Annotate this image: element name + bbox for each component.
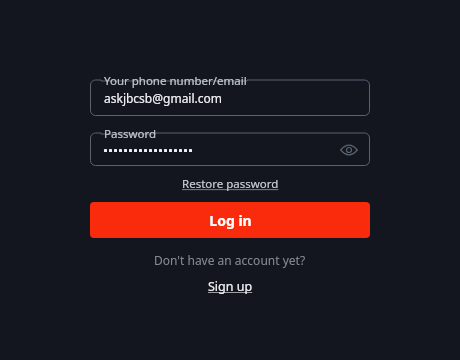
button[interactable]: Password <box>90 126 370 166</box>
button[interactable]: Log in <box>90 202 370 238</box>
staticText: askjbcsb@gmail.com <box>104 90 223 106</box>
staticText: Don't have an account yet? <box>154 252 306 268</box>
button[interactable]: Restore password <box>178 174 283 194</box>
staticText: Restore password <box>182 176 279 192</box>
staticText: Sign up <box>208 278 253 295</box>
staticText: Your phone number/email <box>104 73 247 89</box>
staticText: Password <box>104 126 157 142</box>
button[interactable]: Your phone number/email <box>90 73 370 116</box>
staticText: Log in <box>209 211 252 230</box>
button[interactable]: Show password <box>338 139 360 161</box>
button[interactable]: Sign up <box>204 276 257 297</box>
